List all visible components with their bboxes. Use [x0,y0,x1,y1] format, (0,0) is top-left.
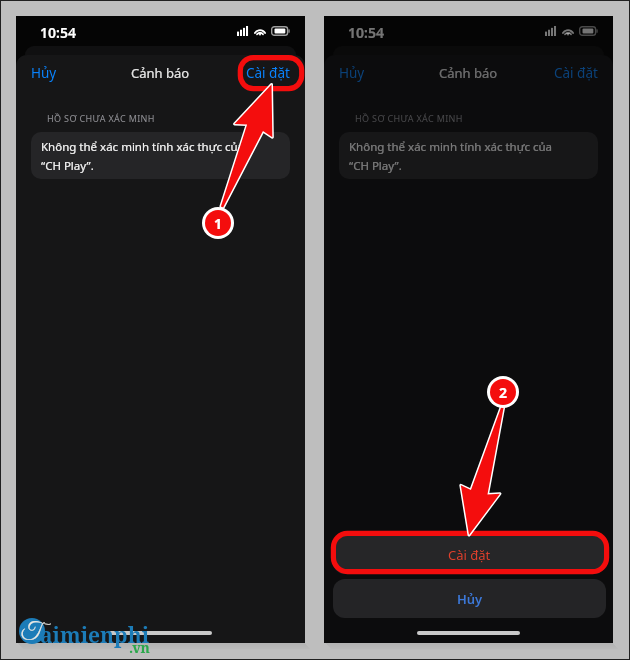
button[interactable]: Cài đặt [333,535,606,574]
button[interactable]: Cài đặt [544,58,613,88]
staticText: 10:54 [348,23,384,42]
staticText: Cảnh báo [131,64,190,82]
button[interactable]: Hủy [16,58,67,88]
staticText: Hủy [457,590,483,608]
button[interactable]: Hủy [324,58,375,88]
staticText: Hủy [31,64,57,82]
staticText: Cài đặt [246,64,290,82]
staticText: Cài đặt [448,546,491,564]
staticText: T [21,620,41,646]
staticText: Không thể xác minh tính xác thực của “CH… [41,139,245,173]
button[interactable]: Cài đặt [236,58,305,88]
staticText: Không thể xác minh tính xác thực của “CH… [349,139,553,173]
staticText: aimienphi [40,621,150,650]
button[interactable]: Hủy [333,579,606,618]
button[interactable]: Không thể xác minh tính xác thực của “CH… [339,132,598,179]
staticText: Cài đặt [554,64,598,82]
button[interactable]: Không thể xác minh tính xác thực của “CH… [31,132,290,179]
staticText: HỒ SƠ CHƯA XÁC MINH [47,112,155,124]
staticText: 1 [214,214,223,233]
staticText: Hủy [339,64,365,82]
staticText: .vn [129,638,150,657]
staticText: 2 [499,383,508,402]
staticText: 10:54 [40,23,76,42]
staticText: HỒ SƠ CHƯA XÁC MINH [355,112,463,124]
staticText: Cảnh báo [439,64,498,82]
